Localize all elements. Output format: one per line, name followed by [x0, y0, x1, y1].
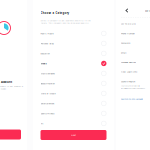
staticText: Create Account	[0, 80, 12, 84]
button[interactable]: Back	[121, 8, 128, 13]
staticText: Entertainment	[40, 102, 54, 105]
staticText: Personal Blog	[40, 42, 53, 45]
staticText: My To Do List	[121, 22, 136, 25]
button[interactable]: Beauty/Fashion	[40, 78, 106, 88]
staticText: Country/Region	[121, 80, 135, 83]
staticText: Next	[71, 133, 76, 136]
button[interactable]: New Login Info	[121, 67, 150, 77]
staticText: Art	[40, 122, 43, 125]
button[interactable]: Personal Blog	[40, 38, 106, 48]
staticText: Musician/Band	[40, 72, 54, 75]
button[interactable]: Next	[40, 130, 106, 140]
staticText: Switch to Pro Account	[121, 97, 143, 100]
staticText: Phone Number	[121, 32, 135, 35]
staticText: Password	[121, 42, 130, 44]
button[interactable]: Create Account	[0, 129, 21, 139]
button[interactable]: Musician/Band	[40, 68, 106, 78]
staticText: New Login Info	[121, 70, 137, 73]
staticText: Select a category to get audience analyt…	[40, 19, 90, 24]
button[interactable]: My To Do List	[121, 19, 150, 29]
button[interactable]: Email	[121, 48, 150, 57]
button[interactable]: Media	[40, 58, 106, 68]
staticText: Media	[40, 62, 46, 65]
button[interactable]: Public Figure	[40, 28, 106, 38]
button[interactable]: Manage devices	[121, 57, 150, 67]
button[interactable]: Phone Number	[121, 29, 150, 38]
button[interactable]: Word of Mouth	[40, 88, 106, 98]
staticText: My Account	[145, 9, 150, 12]
button[interactable]: Entertainment	[40, 98, 106, 108]
staticText: Select a category to get analytics in th…	[0, 85, 23, 90]
staticText: Public Figure	[40, 32, 53, 35]
button[interactable]: Sports/Fitness	[40, 108, 106, 118]
staticText: Email	[121, 51, 127, 54]
button[interactable]: Switch to Pro Account	[121, 89, 143, 100]
button[interactable]: Password	[121, 38, 150, 48]
staticText: Sports/Fitness	[40, 112, 54, 115]
staticText: Manage devices	[121, 61, 136, 64]
staticText: Your security project will install hide …	[121, 84, 145, 89]
staticText: Education	[40, 52, 49, 55]
button[interactable]: Education	[40, 48, 106, 58]
staticText: Beauty/Fashion	[40, 82, 54, 85]
staticText: Choose a Category	[40, 11, 69, 15]
staticText: Word of Mouth	[40, 92, 55, 95]
